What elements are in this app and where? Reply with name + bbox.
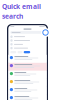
- staticText: search: [2, 12, 23, 21]
- staticText: Quick email: [2, 2, 41, 11]
